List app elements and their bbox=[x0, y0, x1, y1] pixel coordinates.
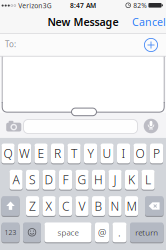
staticText: F bbox=[62, 172, 68, 188]
staticText: Q bbox=[4, 145, 13, 161]
staticText: C bbox=[62, 198, 69, 214]
staticText: B bbox=[94, 198, 102, 214]
staticText: A bbox=[13, 172, 20, 188]
staticText: O bbox=[136, 145, 145, 161]
button[interactable]: Y bbox=[84, 143, 97, 164]
staticText: R bbox=[54, 145, 61, 161]
staticText: X bbox=[45, 198, 52, 214]
button[interactable]: Message field bbox=[23, 119, 137, 133]
staticText: To: bbox=[5, 39, 16, 49]
staticText: M bbox=[127, 198, 137, 214]
button[interactable]: Add Contact bbox=[144, 38, 158, 52]
button[interactable]: P bbox=[150, 143, 163, 164]
button[interactable]: 123 bbox=[1, 222, 19, 243]
button[interactable]: R bbox=[51, 143, 64, 164]
button[interactable]: U bbox=[100, 143, 114, 164]
staticText: D bbox=[44, 172, 53, 188]
button[interactable]: M bbox=[125, 196, 138, 217]
button[interactable]: D bbox=[42, 170, 56, 190]
staticText: E bbox=[37, 145, 44, 161]
staticText: 123 bbox=[4, 228, 16, 237]
button[interactable]: Shift bbox=[1, 196, 19, 217]
button[interactable]: @ bbox=[95, 222, 109, 243]
button[interactable]: W bbox=[18, 143, 31, 164]
button[interactable]: Z bbox=[26, 196, 39, 217]
button[interactable]: E bbox=[34, 143, 48, 164]
button[interactable]: return bbox=[130, 222, 163, 243]
button[interactable]: I bbox=[117, 143, 130, 164]
button[interactable]: H bbox=[92, 170, 105, 190]
button[interactable]: Cancel bbox=[132, 15, 166, 29]
button[interactable]: A bbox=[9, 170, 23, 190]
staticText: S bbox=[29, 172, 36, 188]
staticText: I bbox=[121, 145, 125, 161]
staticText: space bbox=[57, 227, 78, 238]
button[interactable]: Q bbox=[1, 143, 15, 164]
staticText: V bbox=[78, 198, 85, 214]
staticText: L bbox=[145, 172, 151, 188]
staticText: . bbox=[118, 225, 121, 239]
button[interactable]: L bbox=[141, 170, 155, 190]
staticText: N bbox=[110, 198, 119, 214]
staticText: T bbox=[71, 145, 77, 161]
staticText: 8:47 AM bbox=[70, 1, 96, 10]
button[interactable]: S bbox=[26, 170, 39, 190]
button[interactable]: C bbox=[59, 196, 72, 217]
staticText: K bbox=[128, 172, 135, 188]
button[interactable]: N bbox=[108, 196, 122, 217]
button[interactable]: X bbox=[42, 196, 56, 217]
staticText: P bbox=[153, 145, 160, 161]
button[interactable]: T bbox=[67, 143, 81, 164]
staticText: J bbox=[113, 172, 116, 188]
staticText: H bbox=[94, 172, 103, 188]
staticText: 3G bbox=[43, 1, 52, 10]
button[interactable]: Delete bbox=[145, 196, 163, 217]
staticText: Z bbox=[29, 198, 36, 214]
staticText: @ bbox=[98, 226, 106, 238]
button[interactable]: F bbox=[59, 170, 72, 190]
button[interactable]: J bbox=[108, 170, 122, 190]
staticText: Cancel bbox=[132, 15, 166, 29]
button[interactable]: . bbox=[112, 222, 126, 243]
staticText: G bbox=[77, 172, 86, 188]
staticText: W bbox=[19, 145, 30, 161]
staticText: 82% bbox=[133, 1, 147, 10]
button[interactable]: B bbox=[92, 196, 105, 217]
button[interactable]: Emoji bbox=[23, 222, 41, 243]
button[interactable]: V bbox=[75, 196, 89, 217]
staticText: U bbox=[102, 145, 111, 161]
staticText: New Message bbox=[47, 15, 118, 29]
staticText: return bbox=[135, 227, 158, 238]
button[interactable]: O bbox=[133, 143, 147, 164]
staticText: Y bbox=[87, 145, 93, 161]
button[interactable]: K bbox=[125, 170, 138, 190]
staticText: Verizon bbox=[18, 1, 42, 10]
button[interactable]: Camera bbox=[5, 120, 22, 133]
button[interactable]: Record Audio bbox=[144, 119, 158, 133]
button[interactable]: G bbox=[75, 170, 89, 190]
button[interactable]: space bbox=[44, 222, 91, 243]
